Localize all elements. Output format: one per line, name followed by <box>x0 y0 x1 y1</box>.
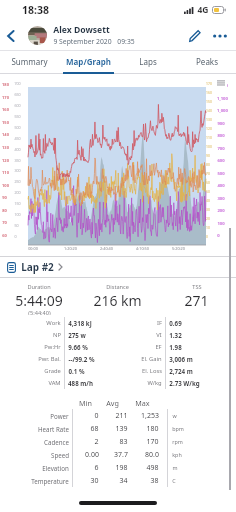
staticText: Distance <box>106 283 129 291</box>
staticText: Elevation <box>42 464 69 472</box>
staticText: Heart Rate <box>38 425 69 433</box>
staticText: 2:40:40 <box>100 246 113 251</box>
staticText: 498 <box>146 463 159 473</box>
staticText: 10 <box>206 225 210 230</box>
button[interactable]: Lap #2 <box>0 257 236 277</box>
staticText: Summary <box>11 56 48 67</box>
staticText: NP <box>53 331 61 339</box>
staticText: Temperature <box>31 477 69 485</box>
staticText: (5:44:40) <box>28 309 51 315</box>
staticText: m <box>172 464 178 471</box>
staticText: VAM <box>48 379 61 387</box>
staticText: 650 <box>14 92 21 97</box>
staticText: Duration <box>27 283 51 291</box>
staticText: 1,000 <box>217 108 228 114</box>
staticText: 350 <box>14 158 21 163</box>
staticText: 2,724 m <box>169 367 193 375</box>
button[interactable]: Laps <box>118 51 177 72</box>
staticText: 170 <box>146 437 159 447</box>
staticText: Peaks <box>196 56 218 67</box>
staticText: 20 <box>206 216 210 221</box>
button[interactable]: Chart legend <box>215 77 227 88</box>
staticText: 200 <box>14 190 21 195</box>
staticText: 140 <box>2 132 9 137</box>
staticText: C <box>172 477 176 484</box>
staticText: 2 <box>94 437 99 447</box>
staticText: 450 <box>14 136 21 141</box>
staticText: 00:00 <box>28 246 38 251</box>
staticText: Pw:Hr <box>44 343 61 351</box>
button[interactable]: Map/Graph <box>59 51 118 72</box>
staticText: 110 <box>206 135 212 140</box>
staticText: 1.98 <box>169 343 182 351</box>
staticText: 250 <box>14 179 21 184</box>
staticText: 9 September 2020 <box>53 37 112 46</box>
staticText: 0 <box>14 234 17 239</box>
button[interactable]: Edit <box>182 21 208 50</box>
staticText: 68 <box>90 424 99 434</box>
staticText: Map/Graph <box>66 56 111 67</box>
staticText: 60 <box>2 233 7 238</box>
staticText: 216 km <box>93 291 142 310</box>
staticText: 50 <box>206 189 210 194</box>
staticText: 160 <box>2 107 9 112</box>
staticText: Avg <box>106 398 119 408</box>
staticText: 3,006 m <box>169 355 193 363</box>
staticText: 271 <box>184 291 209 310</box>
staticText: 700 <box>14 81 21 86</box>
staticText: w <box>172 412 177 419</box>
staticText: 1,100 <box>217 96 228 102</box>
button[interactable]: Summary <box>0 51 59 72</box>
staticText: 100 <box>14 212 21 217</box>
staticText: TSS <box>192 283 202 291</box>
staticText: 5:44:09 <box>15 291 63 310</box>
staticText: bpm <box>172 425 184 432</box>
button[interactable]: Peaks <box>177 51 236 72</box>
staticText: EF <box>155 343 162 351</box>
staticText: 500 <box>14 125 21 130</box>
staticText: 90 <box>206 153 210 158</box>
staticText: 90 <box>2 195 7 200</box>
staticText: 50 <box>14 223 19 228</box>
button[interactable]: More options <box>208 21 232 50</box>
staticText: 110 <box>2 170 9 175</box>
staticText: 400 <box>14 147 21 152</box>
staticText: 60 <box>206 180 210 185</box>
staticText: Laps <box>139 56 157 67</box>
staticText: 1,200 <box>217 83 228 89</box>
staticText: Work <box>46 319 61 327</box>
staticText: 488 m/h <box>68 379 93 387</box>
staticText: 150 <box>206 99 212 104</box>
staticText: 130 <box>206 117 212 122</box>
staticText: 0.69 <box>169 319 182 327</box>
staticText: 09:35 <box>117 37 135 46</box>
staticText: 160 <box>206 90 212 95</box>
staticText: Lap #2 <box>21 260 54 274</box>
staticText: El. Loss <box>142 367 162 375</box>
staticText: 100 <box>2 183 9 188</box>
staticText: 70 <box>206 171 210 176</box>
staticText: Power <box>50 412 69 420</box>
staticText: --/99.2 % <box>68 355 95 363</box>
staticText: 600 <box>14 103 21 108</box>
staticText: Min <box>79 398 92 408</box>
staticText: 100 <box>217 221 225 227</box>
staticText: Alex Dowsett <box>53 24 110 36</box>
staticText: 170 <box>2 95 9 100</box>
staticText: 150 <box>14 201 21 206</box>
staticText: 300 <box>217 196 225 202</box>
button[interactable]: Back <box>0 21 22 50</box>
staticText: VI <box>156 331 162 339</box>
staticText: 180 <box>2 82 9 87</box>
staticText: El. Gain <box>141 355 162 363</box>
staticText: Grade <box>44 367 61 375</box>
staticText: 18:38 <box>22 3 49 17</box>
staticText: 30 <box>206 207 210 212</box>
staticText: 0 <box>206 234 208 239</box>
staticText: 500 <box>217 171 225 177</box>
staticText: 900 <box>217 121 225 127</box>
staticText: 140 <box>206 108 212 113</box>
staticText: 4,318 kJ <box>68 319 92 327</box>
staticText: 30 <box>90 476 99 486</box>
staticText: 37.7 <box>114 450 128 460</box>
